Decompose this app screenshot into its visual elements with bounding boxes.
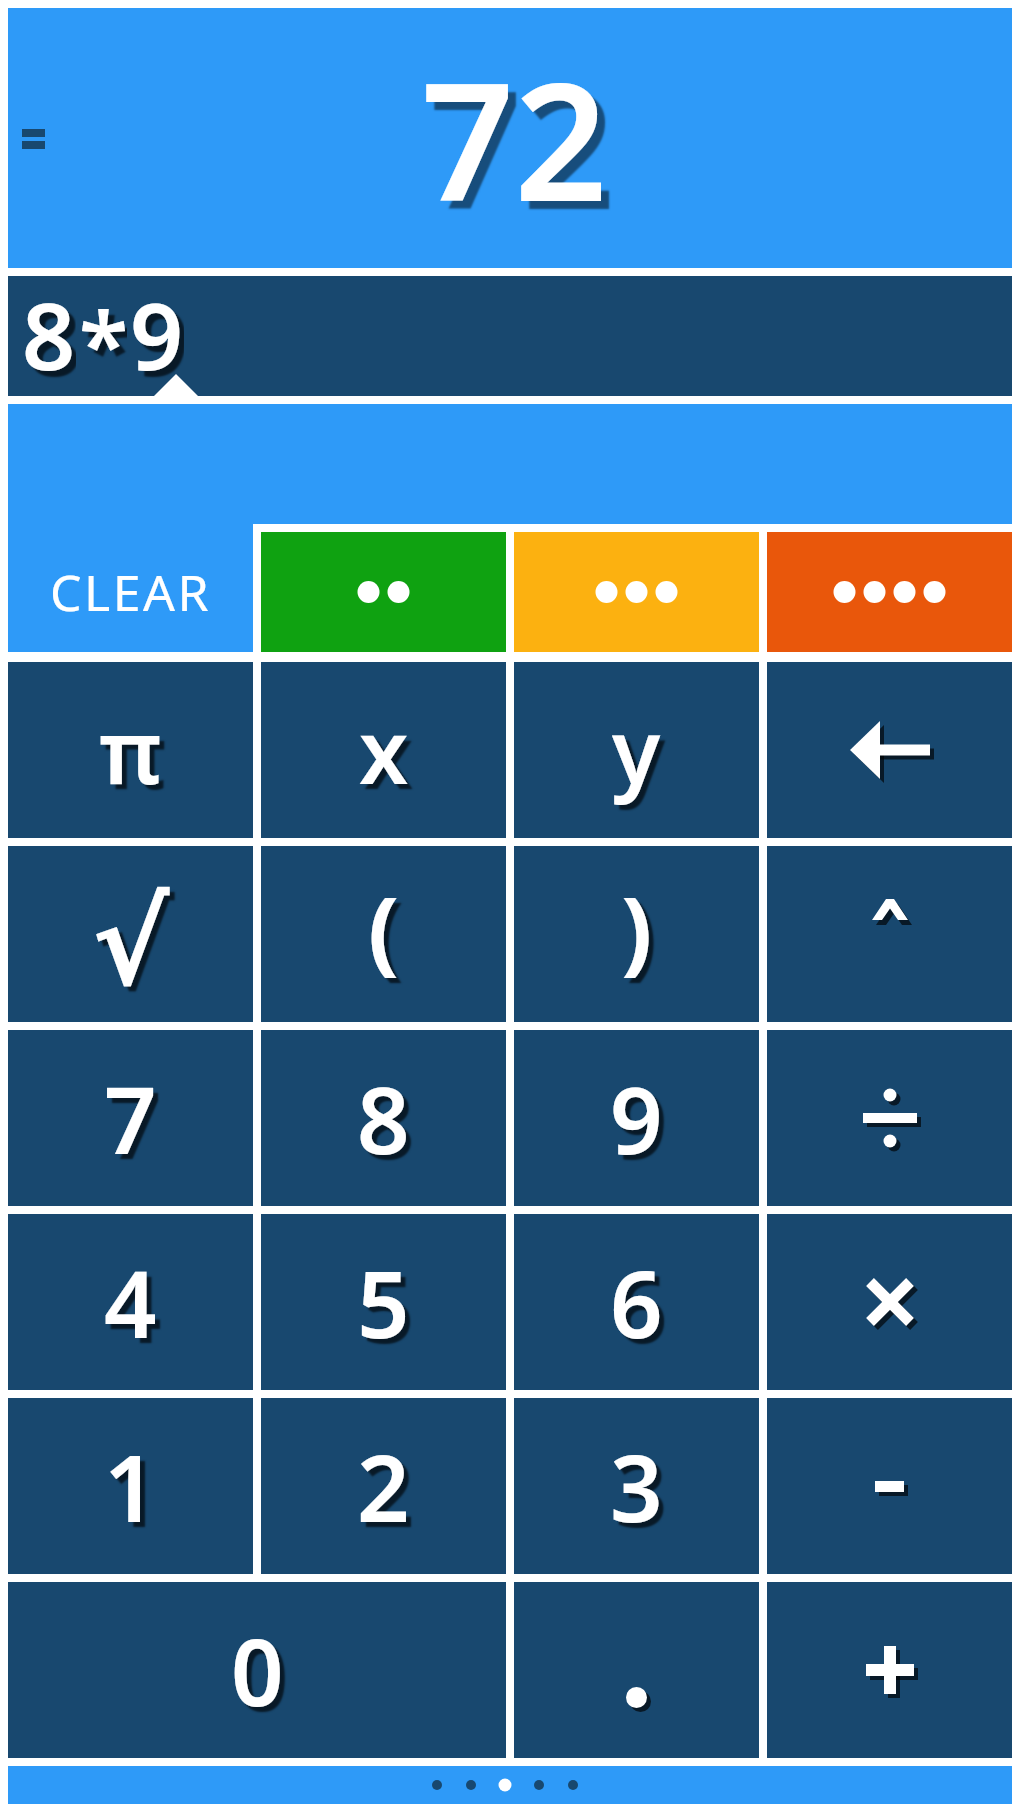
staticText: x [359,690,409,810]
button[interactable]: 9 [514,1030,759,1206]
staticText: 2 [357,1424,410,1549]
button[interactable]: 8 [261,1030,506,1206]
button[interactable]: ( [261,846,506,1022]
staticText: π [99,690,162,810]
button[interactable] [767,1582,1012,1758]
button[interactable]: x [261,662,506,838]
button[interactable] [261,532,506,652]
button[interactable] [767,532,1012,652]
staticText: 72 [421,27,608,249]
button[interactable]: π [8,662,253,838]
button[interactable]: 3 [514,1398,759,1574]
button[interactable] [767,662,1012,838]
staticText: 0 [231,1608,284,1733]
staticText: 8 [22,271,76,391]
staticText: ) [621,866,653,991]
staticText: CLEAR [50,558,212,626]
button[interactable]: 5 [261,1214,506,1390]
button[interactable] [767,846,1012,1022]
staticText: 7 [104,1056,157,1181]
staticText: 3 [610,1424,663,1549]
staticText: y [612,690,661,810]
button[interactable]: ) [514,846,759,1022]
button[interactable]: 6 [514,1214,759,1390]
button[interactable] [514,1582,759,1758]
button[interactable]: √ [8,846,253,1022]
staticText: 8 [357,1056,410,1181]
staticText: √ [92,876,170,1011]
button[interactable]: 2 [261,1398,506,1574]
staticText: ( [368,866,400,991]
button[interactable]: 1 [8,1398,253,1574]
staticText: 4 [104,1240,157,1365]
button[interactable] [767,1214,1012,1390]
button[interactable]: 7 [8,1030,253,1206]
button[interactable]: 0 [8,1582,506,1758]
button[interactable] [767,1030,1012,1206]
button[interactable]: y [514,662,759,838]
staticText: 1 [104,1424,157,1549]
staticText: 9 [130,271,184,391]
staticText: 9 [610,1056,663,1181]
button[interactable]: 4 [8,1214,253,1390]
staticText: 6 [610,1240,663,1365]
staticText: 5 [357,1240,410,1365]
button[interactable]: CLEAR [8,532,253,652]
button[interactable] [767,1398,1012,1574]
staticText: * [79,281,127,401]
button[interactable] [514,532,759,652]
